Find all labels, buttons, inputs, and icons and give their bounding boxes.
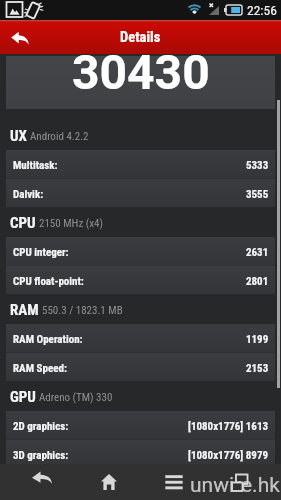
- staticText: 30430: [72, 44, 210, 97]
- staticText: CPU: [10, 214, 36, 232]
- staticText: RAM: [10, 301, 39, 319]
- staticText: unwire.hk: [190, 473, 280, 498]
- staticText: Details: [120, 29, 161, 46]
- staticText: RAM Speed:: [13, 362, 67, 375]
- staticText: 5333: [246, 159, 269, 172]
- button[interactable]: 2D graphics:: [6, 411, 275, 439]
- staticText: Adreno (TM) 330: [39, 391, 113, 404]
- button[interactable]: Back: [0, 20, 40, 54]
- staticText: CPU integer:: [13, 246, 69, 259]
- staticText: UX: [10, 127, 27, 145]
- button[interactable]: Recent apps: [206, 464, 271, 500]
- staticText: 1199: [246, 333, 269, 346]
- button[interactable]: 30430: [6, 56, 275, 109]
- staticText: [1080x1776] 8979: [188, 449, 269, 462]
- button[interactable]: Menu: [141, 464, 206, 500]
- staticText: CPU float-point:: [13, 275, 84, 288]
- staticText: 3D graphics:: [13, 449, 69, 462]
- staticText: 2801: [246, 275, 269, 288]
- staticText: 2D graphics:: [13, 420, 69, 433]
- staticText: [1080x1776] 1613: [188, 420, 269, 433]
- staticText: GPU: [10, 388, 36, 406]
- staticText: Multitask:: [13, 159, 58, 172]
- staticText: 2150 MHz (x4): [39, 217, 103, 230]
- staticText: Dalvik:: [13, 188, 44, 201]
- button[interactable]: RAM Operation:: [6, 324, 275, 352]
- staticText: 3555: [246, 188, 269, 201]
- staticText: RAM Operation:: [13, 333, 83, 346]
- button[interactable]: 3D graphics:: [6, 440, 275, 468]
- button[interactable]: CPU integer:: [6, 237, 275, 265]
- button[interactable]: Dalvik:: [6, 179, 275, 207]
- staticText: 2153: [246, 362, 269, 375]
- staticText: Android 4.2.2: [30, 130, 89, 143]
- button[interactable]: RAM Speed:: [6, 353, 275, 381]
- staticText: 22:56: [247, 2, 277, 18]
- staticText: 2631: [246, 246, 269, 259]
- button[interactable]: Home: [76, 464, 141, 500]
- button[interactable]: Back: [10, 464, 76, 500]
- button[interactable]: CPU float-point:: [6, 266, 275, 294]
- button[interactable]: Multitask:: [6, 150, 275, 178]
- staticText: 550.3 / 1823.1 MB: [42, 304, 123, 317]
